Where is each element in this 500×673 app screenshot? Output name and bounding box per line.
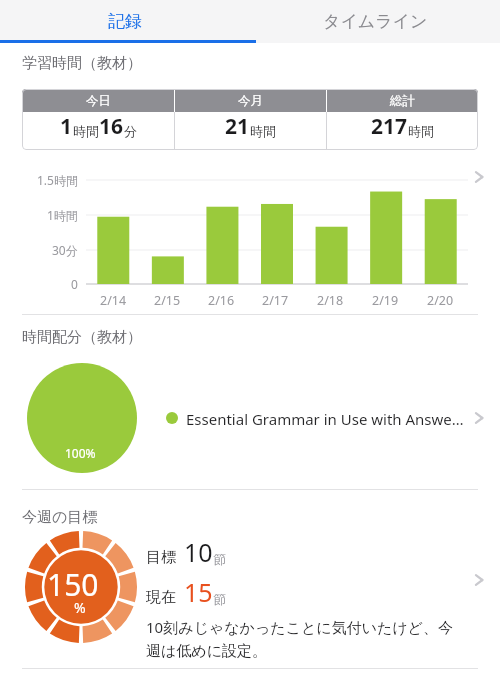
- staticText: 現在: [146, 588, 176, 607]
- staticText: 0: [71, 276, 78, 292]
- button[interactable]: 今日: [22, 89, 478, 150]
- staticText: 2/15: [154, 292, 181, 309]
- staticText: 時間: [408, 123, 434, 139]
- staticText: 節: [213, 591, 226, 607]
- staticText: 10: [184, 535, 213, 569]
- staticText: 15: [184, 575, 213, 609]
- staticText: 2/16: [208, 292, 235, 309]
- staticText: 2/14: [100, 292, 127, 309]
- button[interactable]: 150: [0, 528, 500, 666]
- staticText: 150: [47, 564, 99, 605]
- staticText: 今週の目標: [22, 508, 98, 527]
- button[interactable]: 今週の目標の詳細: [466, 567, 492, 593]
- button[interactable]: 1.5時間: [0, 160, 500, 310]
- staticText: 2/19: [372, 292, 399, 309]
- staticText: 今日: [86, 93, 111, 109]
- staticText: 21: [225, 112, 250, 141]
- staticText: 時間配分（教材）: [22, 328, 142, 347]
- staticText: 総計: [390, 93, 415, 109]
- staticText: 週は低めに設定。: [146, 642, 268, 661]
- staticText: 時間: [250, 123, 276, 139]
- button[interactable]: タイムライン: [250, 0, 500, 43]
- staticText: 目標: [146, 548, 176, 567]
- staticText: 2/17: [262, 292, 289, 309]
- staticText: 節: [213, 551, 226, 567]
- staticText: Essential Grammar in Use with Answe…: [186, 409, 464, 429]
- staticText: タイムライン: [323, 11, 428, 32]
- button[interactable]: 記録: [0, 0, 250, 43]
- staticText: 217: [371, 112, 408, 141]
- staticText: 時間: [73, 123, 99, 139]
- staticText: 2/18: [317, 292, 344, 309]
- button[interactable]: 100%: [0, 355, 500, 483]
- staticText: 1.5時間: [37, 172, 78, 188]
- staticText: %: [74, 598, 86, 617]
- staticText: 1時間: [47, 207, 78, 223]
- staticText: 2/20: [427, 292, 454, 309]
- staticText: 学習時間（教材）: [22, 54, 142, 73]
- staticText: 1: [60, 112, 73, 141]
- staticText: 分: [124, 123, 137, 139]
- staticText: 10刻みじゃなかったことに気付いたけど、今: [146, 617, 454, 637]
- staticText: 今月: [238, 93, 263, 109]
- staticText: 16: [99, 112, 124, 141]
- staticText: 30分: [52, 242, 78, 258]
- staticText: 記録: [108, 11, 142, 32]
- button[interactable]: 時間配分の詳細: [466, 405, 492, 431]
- staticText: 100%: [65, 445, 96, 461]
- button[interactable]: 学習時間の詳細: [466, 164, 492, 190]
